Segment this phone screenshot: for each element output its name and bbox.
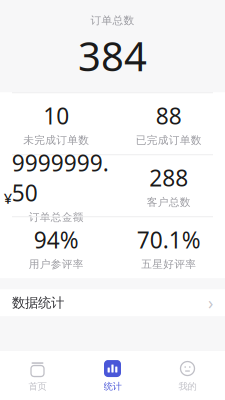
staticText: 10	[43, 101, 69, 131]
button[interactable]: 我的	[150, 354, 225, 397]
staticText: 客户总数	[147, 196, 191, 209]
staticText: 70.1%	[137, 225, 201, 255]
staticText: 已完成订单数	[136, 134, 202, 147]
staticText: 9999999.50	[12, 148, 109, 208]
staticText: ¥	[4, 188, 12, 208]
staticText: 94%	[34, 225, 79, 255]
staticText: 首页	[28, 380, 46, 392]
staticText: 五星好评率	[141, 258, 196, 271]
staticText: 384	[78, 29, 147, 82]
staticText: 数据统计	[12, 294, 64, 311]
staticText: 用户参评率	[29, 258, 84, 271]
button[interactable]: 数据统计	[0, 289, 225, 316]
staticText: 88	[156, 101, 182, 131]
staticText: 统计	[103, 380, 121, 392]
button[interactable]: 统计	[75, 354, 150, 397]
staticText: 未完成订单数	[23, 134, 89, 147]
staticText: 我的	[178, 380, 196, 392]
button[interactable]: 首页	[0, 354, 75, 397]
staticText: 订单总数	[90, 14, 134, 27]
staticText: 288	[149, 163, 188, 193]
staticText: ›	[208, 291, 213, 314]
staticText: 订单总金额	[29, 211, 84, 224]
